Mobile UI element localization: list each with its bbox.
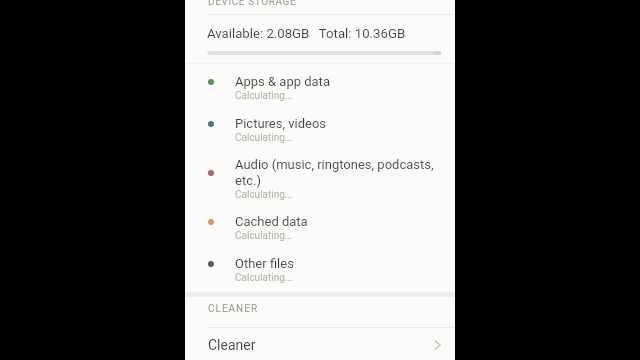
staticText: Calculating... <box>235 189 293 201</box>
button[interactable]: Other files <box>185 248 455 290</box>
staticText: Calculating... <box>235 272 293 284</box>
staticText: Calculating... <box>235 132 293 144</box>
button[interactable]: Audio (music, ringtones, podcasts, etc.) <box>185 150 455 206</box>
staticText: Audio (music, ringtones, podcasts, etc.) <box>235 157 450 188</box>
staticText: DEVICE STORAGE <box>208 0 297 8</box>
button[interactable]: Apps & app data <box>185 66 455 108</box>
staticText: Calculating... <box>235 230 293 242</box>
staticText: Calculating... <box>235 90 293 102</box>
staticText: Cached data <box>235 214 450 229</box>
staticText: Other files <box>235 256 450 271</box>
staticText: Cleaner <box>208 337 256 353</box>
button[interactable]: Cleaner <box>185 332 455 360</box>
button[interactable]: Pictures, videos <box>185 108 455 150</box>
staticText: Available: 2.08GB Total: 10.36GB <box>207 26 406 41</box>
staticText: CLEANER <box>208 303 259 315</box>
button[interactable]: Cached data <box>185 206 455 248</box>
staticText: Pictures, videos <box>235 116 450 131</box>
staticText: Apps & app data <box>235 74 450 89</box>
